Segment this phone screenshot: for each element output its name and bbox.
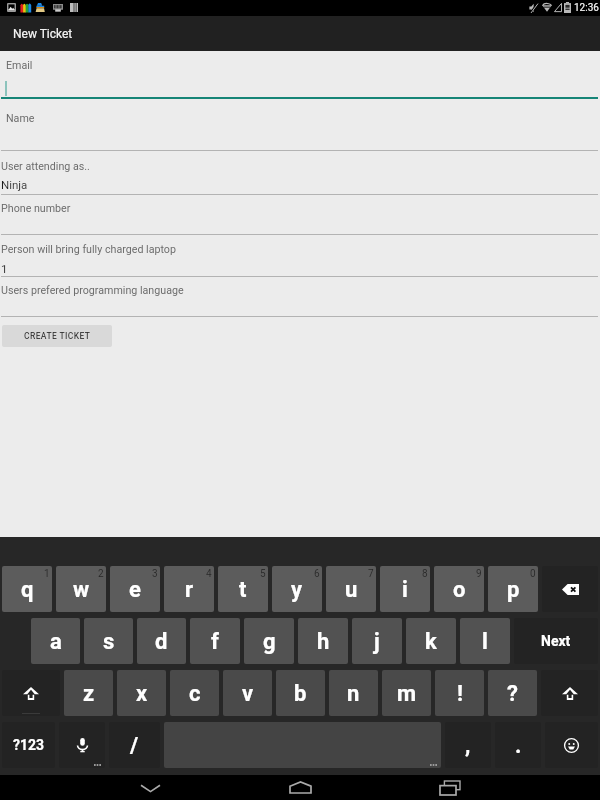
- staticText: CREATE TICKET: [24, 331, 91, 341]
- button[interactable]: q: [2, 566, 52, 612]
- staticText: x: [136, 681, 148, 707]
- button[interactable]: n: [329, 670, 378, 716]
- button[interactable]: z: [64, 670, 113, 716]
- staticText: h: [317, 629, 330, 655]
- staticText: ?: [507, 681, 518, 707]
- button[interactable]: Shift: [541, 670, 598, 716]
- button[interactable]: c: [170, 670, 219, 716]
- button[interactable]: /: [109, 722, 160, 768]
- staticText: 5: [260, 568, 266, 580]
- staticText: Name: [6, 112, 35, 125]
- staticText: 1: [1, 262, 8, 275]
- staticText: b: [294, 681, 307, 707]
- button[interactable]: g: [244, 618, 294, 664]
- staticText: n: [347, 681, 360, 707]
- button[interactable]: Emoji: [545, 722, 598, 768]
- staticText: i: [402, 577, 408, 603]
- button[interactable]: p: [488, 566, 538, 612]
- button[interactable]: e: [110, 566, 160, 612]
- staticText: t: [239, 577, 247, 603]
- staticText: e: [129, 577, 141, 603]
- staticText: 8: [422, 568, 428, 580]
- staticText: v: [242, 681, 254, 707]
- staticText: 0: [530, 568, 536, 580]
- button[interactable]: CREATE TICKET: [2, 325, 112, 347]
- button[interactable]: v: [223, 670, 272, 716]
- staticText: k: [425, 629, 437, 655]
- staticText: c: [189, 681, 201, 707]
- button[interactable]: ?: [488, 670, 537, 716]
- staticText: ,: [465, 733, 471, 759]
- button[interactable]: .: [495, 722, 541, 768]
- staticText: 2: [98, 568, 104, 580]
- staticText: 7: [368, 568, 374, 580]
- button[interactable]: d: [137, 618, 186, 664]
- button[interactable]: m: [382, 670, 431, 716]
- button[interactable]: f: [190, 618, 240, 664]
- staticText: Next: [541, 633, 571, 649]
- button[interactable]: t: [218, 566, 268, 612]
- staticText: u: [345, 577, 358, 603]
- staticText: m: [397, 681, 417, 707]
- button[interactable]: k: [406, 618, 456, 664]
- staticText: 12:36: [574, 2, 599, 14]
- staticText: a: [50, 629, 62, 655]
- staticText: s: [103, 629, 115, 655]
- button[interactable]: Home: [225, 775, 375, 800]
- button[interactable]: o: [434, 566, 484, 612]
- staticText: 3: [152, 568, 158, 580]
- staticText: User attending as..: [1, 160, 90, 173]
- staticText: j: [374, 629, 380, 655]
- staticText: y: [291, 577, 303, 603]
- staticText: Ninja: [1, 178, 28, 191]
- button[interactable]: r: [164, 566, 214, 612]
- button[interactable]: !: [435, 670, 484, 716]
- staticText: /: [130, 733, 139, 759]
- staticText: 9: [476, 568, 482, 580]
- staticText: p: [507, 577, 520, 603]
- button[interactable]: x: [117, 670, 166, 716]
- button[interactable]: i: [380, 566, 430, 612]
- staticText: .: [515, 733, 522, 759]
- staticText: r: [185, 577, 194, 603]
- button[interactable]: Hide keyboard: [75, 775, 225, 800]
- staticText: g: [263, 629, 276, 655]
- button[interactable]: l: [460, 618, 510, 664]
- staticText: d: [155, 629, 168, 655]
- staticText: o: [453, 577, 466, 603]
- staticText: 4: [206, 568, 212, 580]
- staticText: f: [211, 629, 219, 655]
- button[interactable]: u: [326, 566, 376, 612]
- button[interactable]: b: [276, 670, 325, 716]
- button[interactable]: w: [56, 566, 106, 612]
- staticText: ?123: [13, 737, 45, 753]
- button[interactable]: Voice input: [59, 722, 105, 768]
- button[interactable]: Shift: [2, 670, 60, 716]
- staticText: Person will bring fully charged laptop: [1, 243, 176, 256]
- staticText: w: [73, 577, 90, 603]
- button[interactable]: h: [298, 618, 348, 664]
- staticText: Users prefered programming language: [1, 284, 184, 297]
- button[interactable]: ?123: [2, 722, 55, 768]
- staticText: Email: [6, 59, 33, 72]
- button[interactable]: s: [84, 618, 133, 664]
- button[interactable]: j: [352, 618, 402, 664]
- staticText: l: [482, 629, 488, 655]
- button[interactable]: y: [272, 566, 322, 612]
- staticText: z: [83, 681, 95, 707]
- button[interactable]: a: [31, 618, 80, 664]
- button[interactable]: Backspace: [542, 566, 598, 612]
- button[interactable]: ,: [445, 722, 491, 768]
- staticText: !: [457, 681, 463, 707]
- staticText: 6: [314, 568, 320, 580]
- staticText: New Ticket: [13, 27, 73, 41]
- staticText: 1: [44, 568, 50, 580]
- staticText: q: [21, 577, 34, 603]
- button[interactable]: Next: [514, 618, 598, 664]
- staticText: Phone number: [1, 202, 71, 215]
- button[interactable]: Recent apps: [375, 775, 525, 800]
